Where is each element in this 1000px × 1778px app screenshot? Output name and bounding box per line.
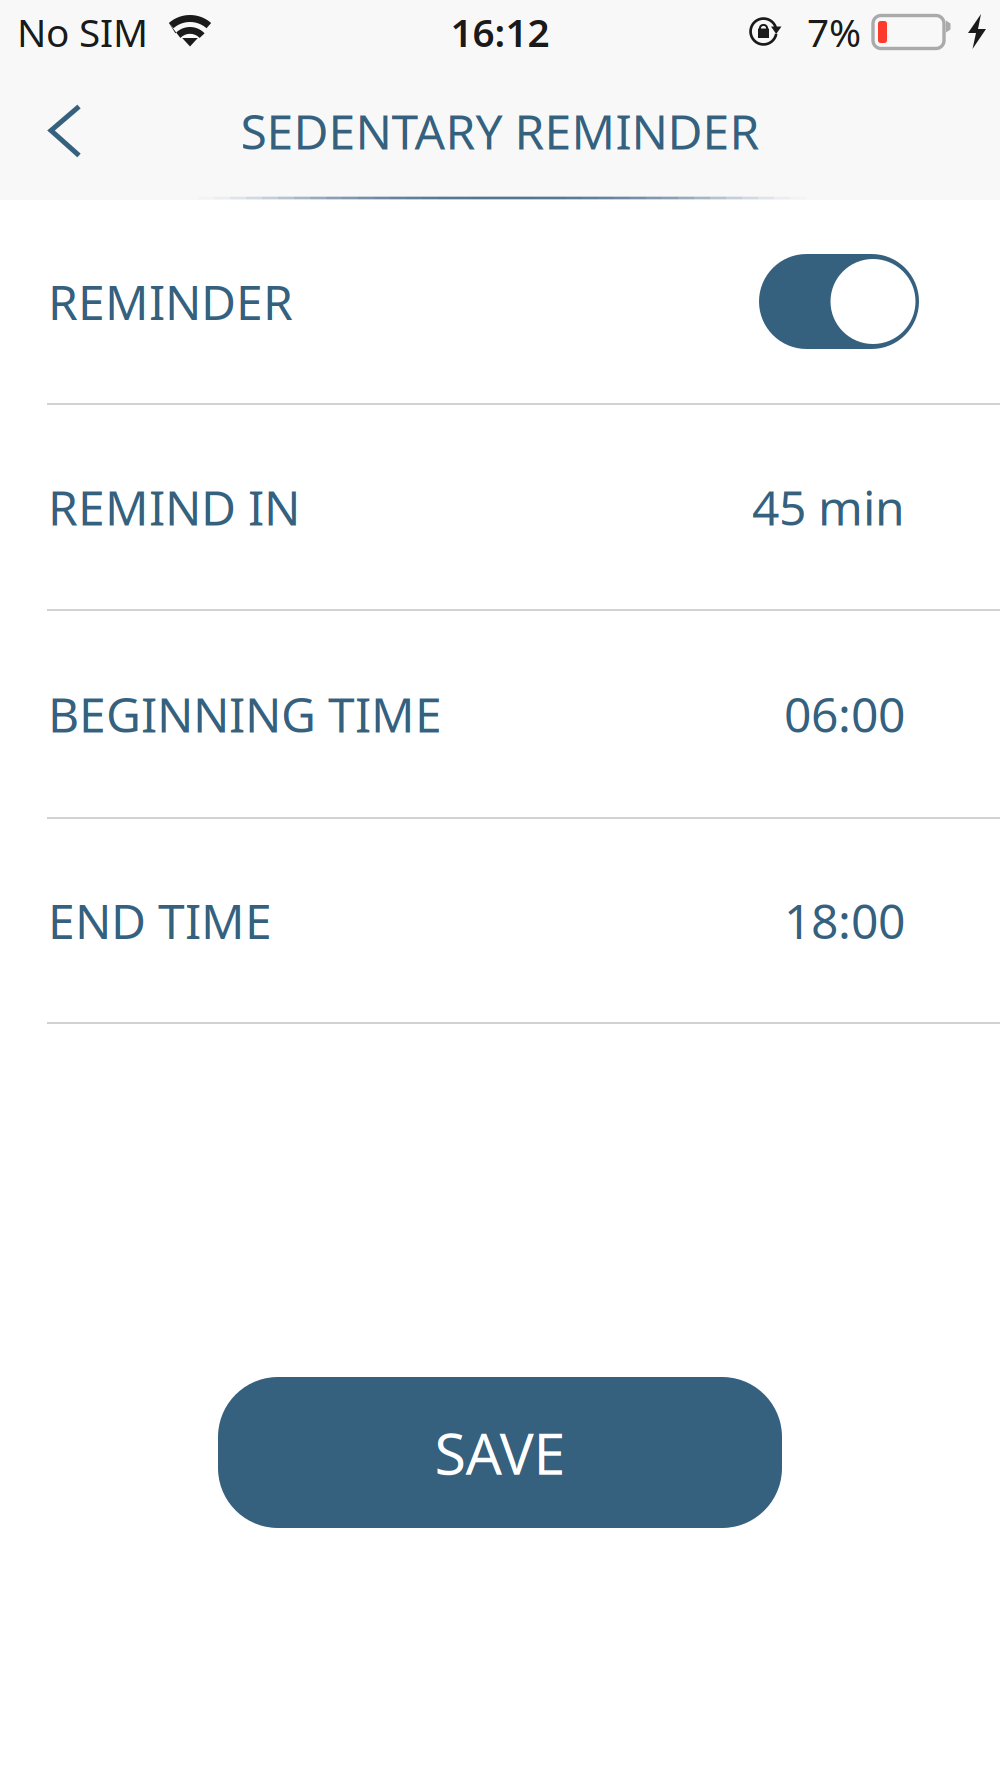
button[interactable]: Back	[17, 83, 113, 179]
button[interactable]: BEGINNING TIME	[0, 611, 1000, 819]
staticText: BEGINNING TIME	[48, 682, 442, 746]
staticText: 16:12	[450, 6, 549, 58]
staticText: No SIM	[17, 6, 148, 58]
button[interactable]: END TIME	[0, 819, 1000, 1024]
staticText: SAVE	[434, 1414, 565, 1490]
staticText: 7%	[807, 6, 861, 58]
staticText: REMIND IN	[48, 475, 300, 539]
button[interactable]: REMIND IN	[0, 405, 1000, 611]
staticText: END TIME	[48, 889, 272, 952]
staticText: 06:00	[784, 682, 905, 746]
button[interactable]: SAVE	[218, 1377, 782, 1528]
staticText: REMINDER	[48, 270, 293, 333]
button[interactable]: Reminder on	[759, 254, 919, 349]
staticText: 18:00	[784, 889, 905, 952]
staticText: 45 min	[752, 475, 905, 539]
staticText: SEDENTARY REMINDER	[240, 99, 759, 163]
